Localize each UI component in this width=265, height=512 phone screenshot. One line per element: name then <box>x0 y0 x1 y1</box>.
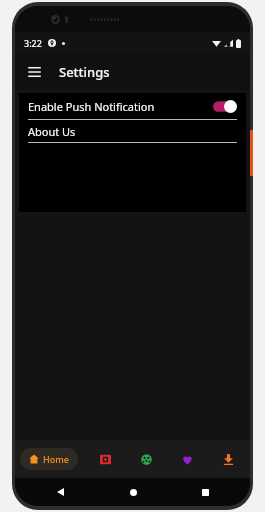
button[interactable]: About Us <box>19 120 246 142</box>
button[interactable]: Home <box>20 448 78 470</box>
button[interactable]: Home <box>122 481 144 503</box>
button[interactable]: Downloads <box>215 446 241 472</box>
staticText: Enable Push Notification <box>28 99 213 114</box>
button[interactable]: Orders <box>92 446 118 472</box>
button[interactable]: Back <box>49 481 71 503</box>
button[interactable]: Explore <box>133 446 159 472</box>
button[interactable]: Favorites <box>174 446 200 472</box>
button[interactable]: Recent apps <box>194 481 216 503</box>
staticText: Home <box>43 453 69 465</box>
button[interactable]: Enable Push Notification toggle <box>213 100 237 113</box>
staticText: Settings <box>59 63 110 81</box>
staticText: About Us <box>28 124 76 139</box>
staticText: 3:22 <box>24 37 42 49</box>
button[interactable]: Open navigation menu <box>19 57 49 87</box>
button[interactable]: Enable Push Notification <box>19 93 246 119</box>
